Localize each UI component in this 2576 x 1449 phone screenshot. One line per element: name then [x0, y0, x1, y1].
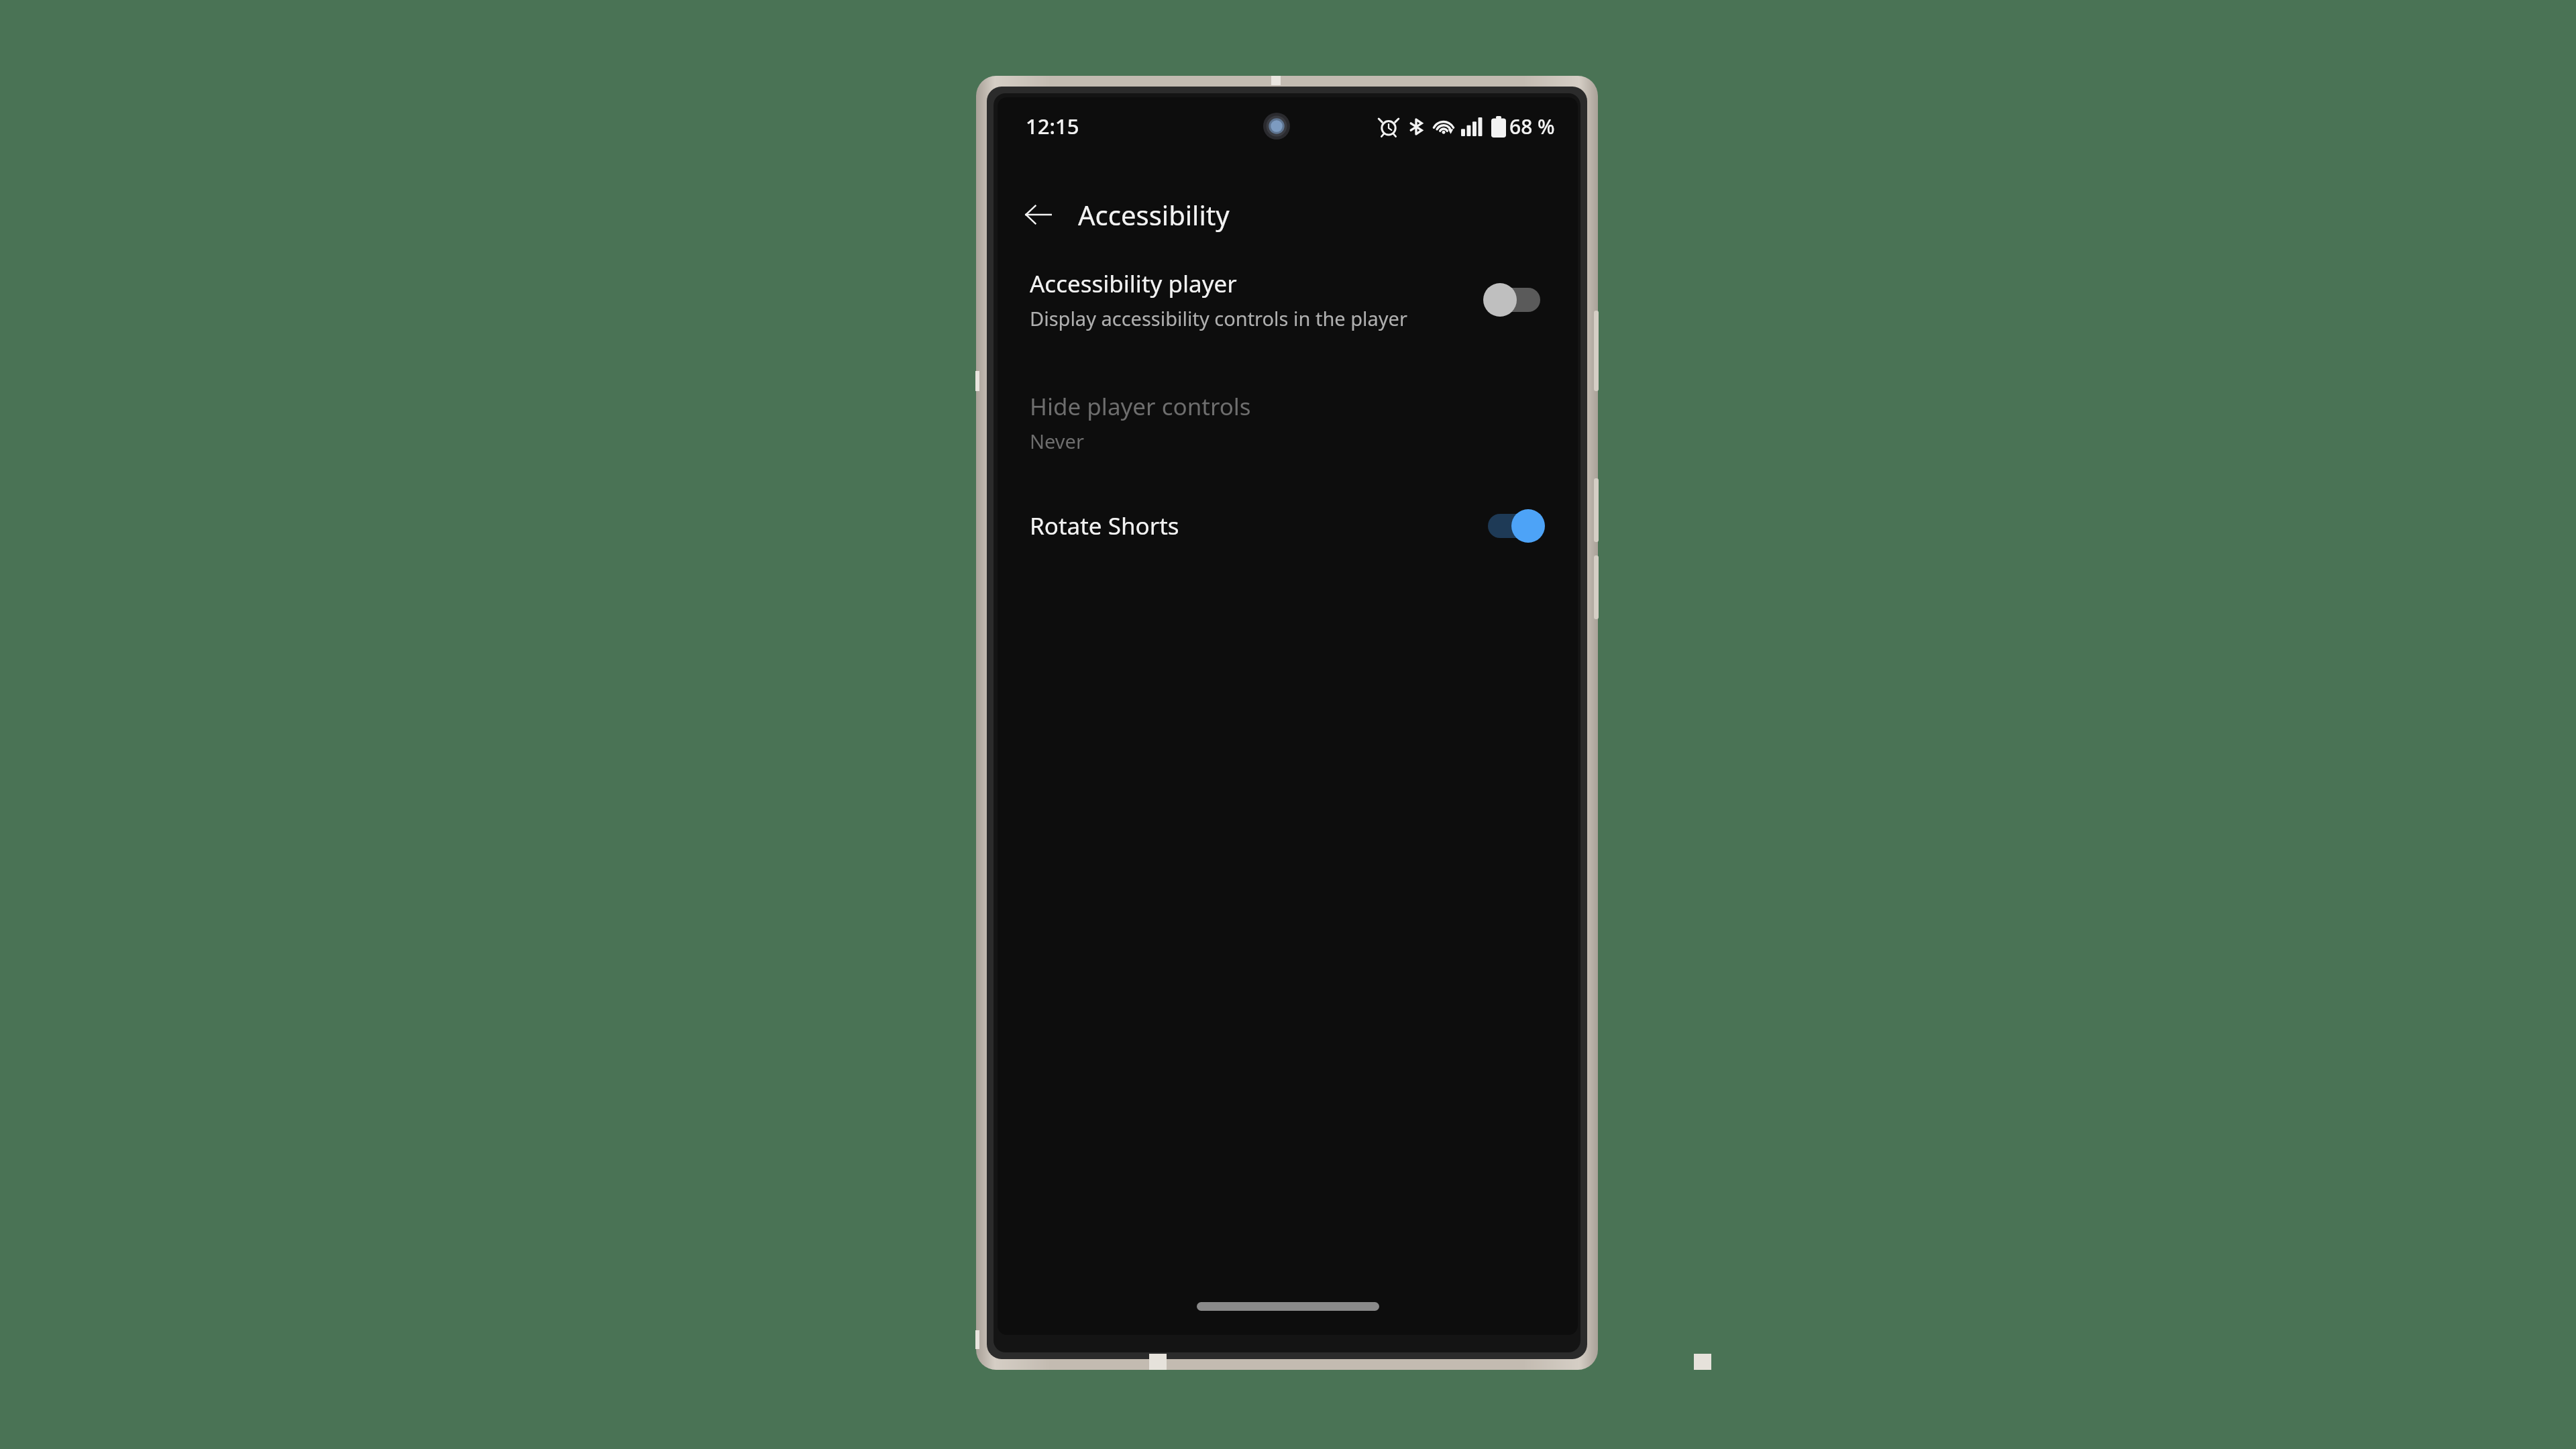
button[interactable]: Rotate Shorts on [1481, 505, 1546, 547]
staticText: Accessibility player [1030, 268, 1237, 300]
button[interactable]: Accessibility player off [1481, 279, 1546, 321]
staticText: 12:15 [1026, 112, 1079, 140]
staticText: Hide player controls [1030, 390, 1251, 423]
staticText: Display accessibility controls in the pl… [1030, 305, 1407, 331]
staticText: Accessibility [1078, 197, 1230, 233]
button[interactable]: Rotate Shorts [998, 496, 1578, 556]
staticText: Rotate Shorts [1030, 510, 1179, 542]
button[interactable]: Hide player controls [998, 381, 1578, 464]
staticText: 68 % [1509, 113, 1555, 140]
button[interactable]: Accessibility player [998, 258, 1578, 341]
button[interactable]: Back [1012, 189, 1063, 240]
staticText: Never [1030, 428, 1084, 454]
